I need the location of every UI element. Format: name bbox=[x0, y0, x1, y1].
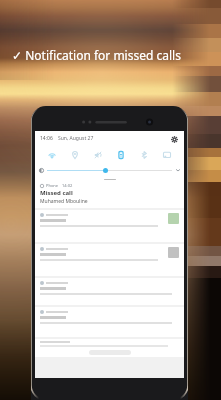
button[interactable] bbox=[35, 244, 184, 276]
button[interactable]: Bluetooth bbox=[136, 147, 152, 163]
button[interactable]: Phone bbox=[35, 182, 184, 208]
staticText: Sun, August 27 bbox=[58, 135, 94, 142]
staticText: Muhamed Mbouline bbox=[40, 198, 88, 205]
button[interactable]: Location bbox=[67, 147, 83, 163]
button[interactable] bbox=[35, 278, 184, 305]
staticText: 14:06 bbox=[40, 135, 53, 142]
staticText: Phone bbox=[46, 183, 59, 188]
button[interactable] bbox=[35, 307, 184, 337]
button[interactable]: Wi-Fi bbox=[44, 147, 60, 163]
button[interactable]: Sound bbox=[90, 147, 106, 163]
button[interactable] bbox=[35, 210, 184, 242]
button[interactable]: Auto rotate bbox=[113, 147, 129, 163]
staticText: 14:02 bbox=[62, 183, 73, 188]
button[interactable]: Settings bbox=[168, 133, 180, 145]
staticText: ✓ Notification for missed calls bbox=[12, 47, 181, 63]
button[interactable]: Screen cast bbox=[159, 147, 175, 163]
staticText: Missed call bbox=[40, 189, 73, 197]
